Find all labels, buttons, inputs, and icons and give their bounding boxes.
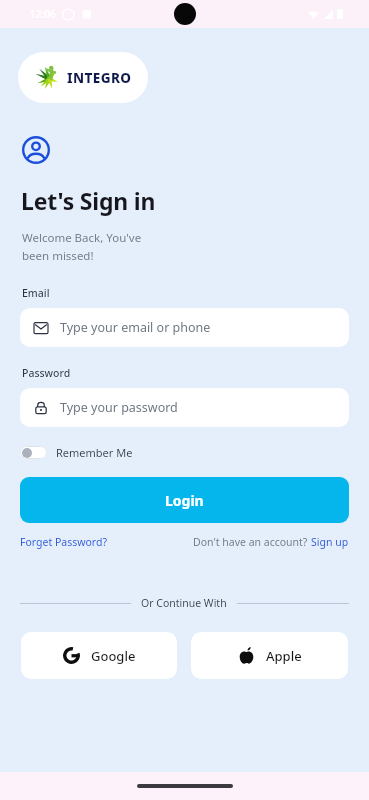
button[interactable]: Sign up (311, 535, 349, 549)
staticText: Type your password (60, 399, 178, 416)
staticText: Login (165, 491, 204, 510)
staticText: Remember Me (56, 445, 133, 460)
button[interactable]: Apple (191, 632, 348, 679)
staticText: Apple (266, 647, 302, 665)
button[interactable]: Type your password (20, 388, 349, 427)
staticText: Google (91, 647, 136, 665)
staticText: Don't have an account? (193, 535, 311, 549)
button[interactable]: Google (21, 632, 177, 679)
staticText: 12:06 (30, 7, 56, 21)
button[interactable]: INTEGRO (18, 52, 148, 103)
staticText: Welcome Back, You've been missed! (22, 230, 142, 263)
button[interactable]: Type your email or phone (20, 308, 349, 347)
staticText: Let's Sign in (21, 185, 156, 216)
button[interactable]: Remember Me (20, 445, 133, 460)
staticText: INTEGRO (67, 69, 132, 87)
staticText: Type your email or phone (60, 319, 211, 336)
staticText: Sign up (311, 535, 349, 549)
button[interactable]: Login (20, 477, 349, 523)
staticText: Email (22, 286, 50, 300)
staticText: Or Continue With (141, 596, 227, 610)
staticText: Forget Password? (20, 535, 107, 549)
button[interactable]: Forget Password? (20, 535, 107, 549)
staticText: Password (22, 366, 71, 380)
other: Account (22, 136, 50, 164)
